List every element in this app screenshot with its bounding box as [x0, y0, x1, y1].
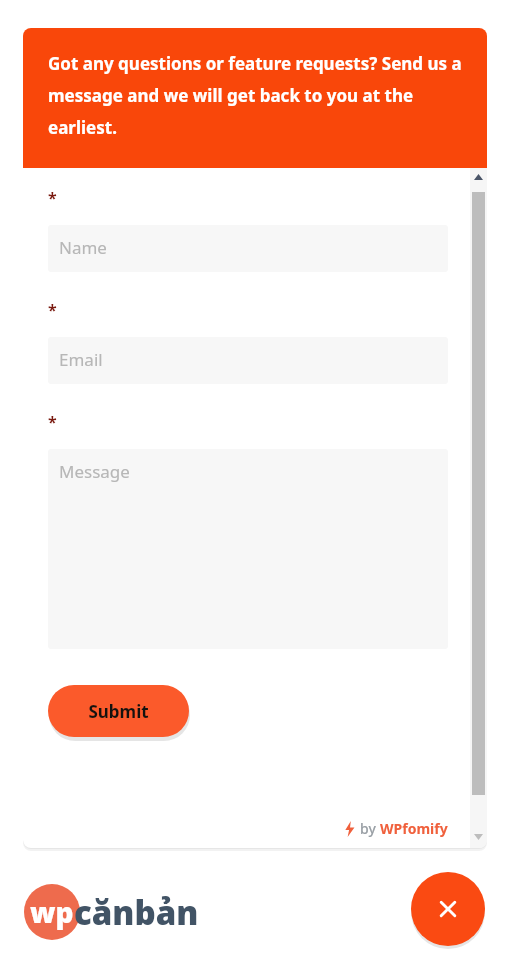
staticText: wp [30, 893, 74, 931]
staticText: Message [59, 460, 130, 483]
staticText: Email [59, 348, 103, 371]
button[interactable]: Submit [48, 685, 189, 737]
button[interactable]: Scroll up [470, 168, 487, 185]
button[interactable]: Name [48, 225, 448, 272]
staticText: WPfomify [380, 819, 448, 838]
staticText: Name [59, 236, 107, 259]
button[interactable]: wp [24, 884, 205, 940]
staticText: Got any questions or feature requests? S… [48, 52, 469, 139]
staticText: * [48, 187, 57, 209]
staticText: Submit [88, 700, 149, 723]
button[interactable]: Scroll down [470, 826, 487, 848]
staticText: * [48, 299, 57, 321]
staticText: by [360, 819, 380, 838]
button[interactable]: Email [48, 337, 448, 384]
button[interactable]: Message [48, 449, 448, 649]
staticText: * [48, 411, 57, 433]
button[interactable]: by [344, 819, 448, 838]
button[interactable]: Close [411, 872, 485, 946]
staticText: cănbản [74, 890, 199, 935]
